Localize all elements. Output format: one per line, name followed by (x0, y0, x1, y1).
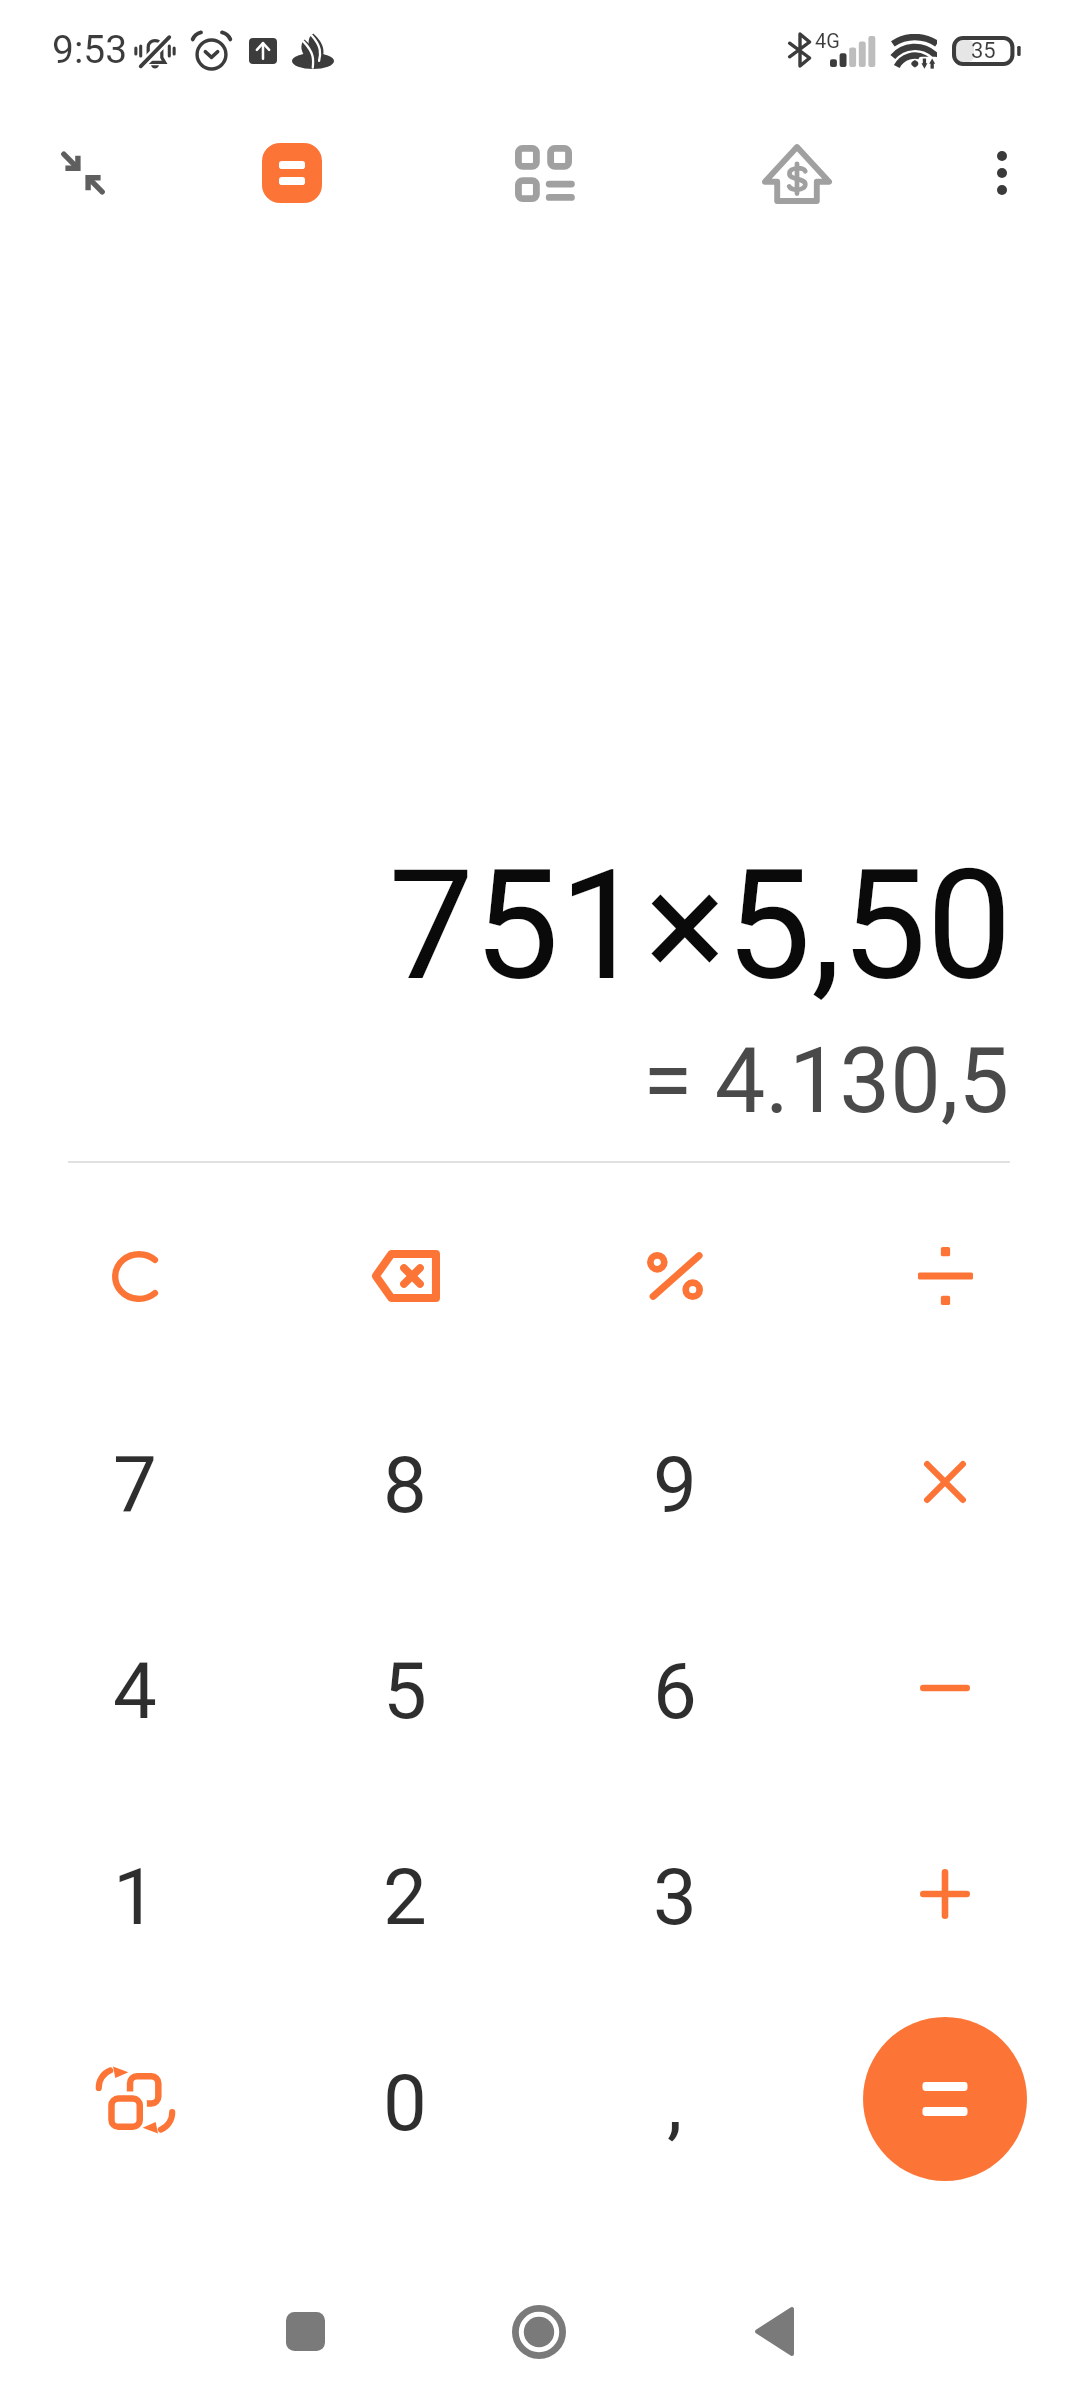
staticText: , (667, 2058, 683, 2149)
staticText: 6 (653, 1646, 697, 1737)
button[interactable]: , (540, 1997, 810, 2203)
staticText: 35 (971, 38, 996, 64)
button[interactable]: Home (479, 2272, 599, 2392)
button[interactable]: 8 (270, 1379, 540, 1585)
button[interactable]: Backspace (270, 1173, 540, 1379)
button[interactable]: Percent (540, 1173, 810, 1379)
button[interactable]: 0 (270, 1997, 540, 2203)
button[interactable]: 7 (0, 1379, 270, 1585)
staticText: = 4.130,5 (642, 1029, 1009, 1134)
button[interactable]: History (499, 129, 587, 217)
staticText: 7 (113, 1440, 157, 1531)
button[interactable]: Multiply (810, 1379, 1080, 1585)
button[interactable]: Mortgage calculator (753, 130, 841, 218)
button[interactable]: Unit converter (0, 1997, 270, 2203)
staticText: 2 (383, 1852, 427, 1943)
button[interactable]: Back (713, 2271, 833, 2391)
button[interactable]: Plus (810, 1791, 1080, 1997)
button[interactable]: 3 (540, 1791, 810, 1997)
button[interactable]: More options (962, 129, 1042, 217)
staticText: 8 (383, 1440, 427, 1531)
button[interactable]: Divide (810, 1173, 1080, 1379)
staticText: 4G (815, 29, 840, 52)
button[interactable]: Minus (810, 1585, 1080, 1791)
staticText: 3 (653, 1852, 697, 1943)
button[interactable]: Recents (245, 2271, 365, 2391)
button[interactable]: Clear (0, 1173, 270, 1379)
button[interactable]: 5 (270, 1585, 540, 1791)
button[interactable]: Equals (842, 1996, 1048, 2202)
button[interactable]: 1 (0, 1791, 270, 1997)
button[interactable]: 9 (540, 1379, 810, 1585)
button[interactable]: 6 (540, 1585, 810, 1791)
button[interactable]: 4 (0, 1585, 270, 1791)
staticText: 751×5,50 (388, 837, 1012, 1015)
staticText: 4 (113, 1646, 157, 1737)
staticText: 1 (113, 1852, 157, 1943)
button[interactable]: 2 (270, 1791, 540, 1997)
button[interactable]: Collapse (39, 129, 127, 217)
button[interactable]: Calculator (242, 123, 342, 223)
staticText: 5 (383, 1646, 427, 1737)
staticText: 9 (653, 1440, 697, 1531)
staticText: 9:53 (52, 27, 128, 73)
staticText: 0 (383, 2058, 427, 2149)
